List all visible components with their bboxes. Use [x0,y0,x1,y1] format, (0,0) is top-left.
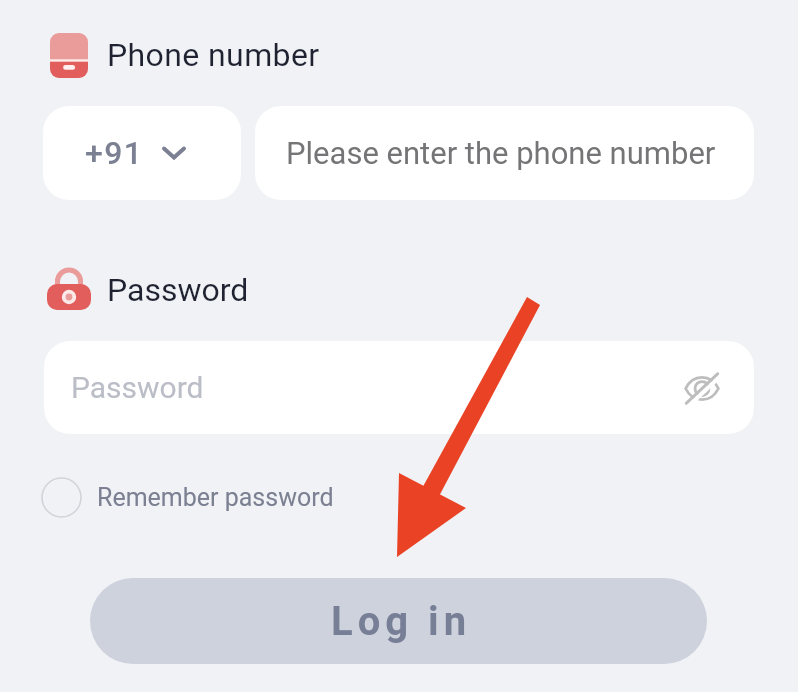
staticText: +91 [85,134,144,172]
staticText: Remember password [97,483,334,512]
button[interactable]: Show password [678,364,726,412]
staticText: Phone number [107,36,320,74]
staticText: Log in [331,598,472,645]
button[interactable]: Password [44,341,754,434]
staticText: Please enter the phone number [286,135,716,171]
button[interactable]: Remember password [41,474,334,521]
button[interactable]: Log in [90,578,707,664]
staticText: Password [71,370,204,405]
staticText: Password [107,271,249,309]
button[interactable]: Please enter the phone number [255,106,754,200]
button[interactable]: +91 [43,106,241,200]
